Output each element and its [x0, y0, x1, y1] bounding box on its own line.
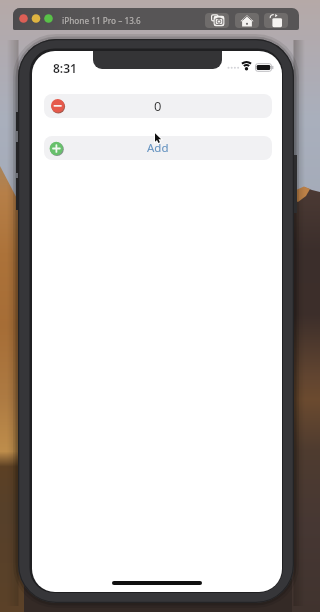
staticText: 0 [154, 97, 162, 115]
staticText: 8:31 [53, 60, 95, 74]
button[interactable] [205, 13, 229, 28]
button[interactable] [264, 13, 288, 28]
staticText: Add [147, 140, 169, 156]
button[interactable]: 0 [44, 94, 272, 118]
staticText: iPhone 11 Pro – 13.6 [62, 15, 141, 26]
button[interactable] [235, 13, 259, 28]
button[interactable]: Add [44, 136, 272, 160]
